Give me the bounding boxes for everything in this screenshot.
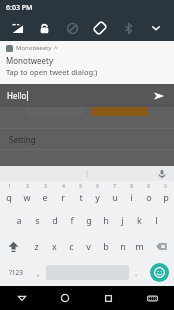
button[interactable]: 8 <box>123 181 140 207</box>
button[interactable]: Auto rotate <box>86 15 114 41</box>
staticText: y <box>95 191 100 203</box>
staticText: 7 <box>113 183 116 189</box>
button[interactable]: 1 <box>0 181 18 207</box>
button[interactable]: a <box>10 207 28 233</box>
button[interactable]: Backspace <box>148 233 174 259</box>
staticText: 2 <box>26 183 29 189</box>
staticText: 6 <box>96 183 99 189</box>
button[interactable]: ?123 <box>0 259 31 286</box>
button[interactable]: Setting <box>0 129 174 149</box>
staticText: q <box>6 191 12 203</box>
button[interactable]: . <box>129 259 144 286</box>
staticText: Monotweety <box>6 55 54 66</box>
button[interactable]: 9 <box>140 181 157 207</box>
button[interactable]: Send tweet <box>151 88 167 104</box>
button[interactable]: Bluetooth <box>114 15 142 41</box>
staticText: ^ <box>54 44 58 52</box>
button[interactable]: Do not disturb <box>58 15 86 41</box>
staticText: 3 <box>44 183 47 189</box>
button[interactable]: g <box>80 207 97 233</box>
button[interactable]: 2 <box>18 181 36 207</box>
button[interactable]: 3 <box>36 181 54 207</box>
staticText: ?123 <box>9 268 23 277</box>
button[interactable]: Home <box>43 286 86 310</box>
button[interactable]: Mobile signal LTE <box>4 15 31 41</box>
staticText: Monotweety <box>16 44 52 52</box>
staticText: v <box>86 240 91 252</box>
button[interactable]: x <box>45 233 63 259</box>
button[interactable]: k <box>131 207 148 233</box>
button[interactable]: f <box>63 207 80 233</box>
button[interactable]: 0 <box>157 181 174 207</box>
button[interactable]: s <box>28 207 46 233</box>
staticText: f <box>70 214 74 226</box>
staticText: g <box>86 214 92 226</box>
button[interactable]: Lock <box>31 15 58 41</box>
staticText: a <box>16 214 22 226</box>
button[interactable]: , <box>31 259 46 286</box>
button[interactable]: 5 <box>72 181 89 207</box>
button[interactable]: b <box>97 233 114 259</box>
staticText: h <box>103 214 109 226</box>
staticText: Tap to open tweet dialog:) <box>6 67 98 77</box>
button[interactable]: z <box>27 233 45 259</box>
staticText: 9 <box>147 183 150 189</box>
staticText: z <box>34 240 39 252</box>
staticText: p <box>163 191 169 203</box>
button[interactable]: 7 <box>106 181 123 207</box>
staticText: c <box>69 240 74 252</box>
button[interactable]: l <box>148 207 165 233</box>
button[interactable]: d <box>46 207 63 233</box>
other: Expand quick settings <box>150 22 162 34</box>
button[interactable]: Monotweety <box>0 41 174 84</box>
staticText: t <box>79 191 83 203</box>
button[interactable]: Expand quick settings <box>142 15 170 41</box>
staticText: k <box>137 214 142 226</box>
other: Bluetooth <box>122 22 135 35</box>
button[interactable]: h <box>97 207 114 233</box>
staticText: . <box>135 267 138 278</box>
staticText: u <box>112 191 118 203</box>
button[interactable]: 4 <box>54 181 72 207</box>
staticText: 6:03 PM <box>6 3 33 13</box>
other: Auto rotate <box>93 21 107 35</box>
button[interactable]: c <box>63 233 80 259</box>
button[interactable]: Hide keyboard <box>130 286 174 310</box>
button[interactable]: j <box>114 207 131 233</box>
staticText: e <box>42 191 48 203</box>
button[interactable]: m <box>131 233 148 259</box>
staticText: Setting <box>9 134 36 145</box>
button[interactable]: Voice input <box>156 168 168 180</box>
button[interactable]: Shift <box>0 233 27 259</box>
staticText: r <box>61 191 65 203</box>
button[interactable]: n <box>114 233 131 259</box>
staticText: s <box>35 214 40 226</box>
staticText: j <box>121 214 124 226</box>
staticText: 8 <box>130 183 133 189</box>
staticText: b <box>103 240 109 252</box>
button[interactable]: v <box>80 233 97 259</box>
other: Mobile signal LTE <box>11 21 25 35</box>
other: Lock <box>38 22 51 35</box>
staticText: Hello <box>7 90 27 101</box>
staticText: n <box>120 240 126 252</box>
staticText: w <box>23 191 31 203</box>
button[interactable]: Emoji <box>144 259 174 286</box>
button[interactable]: 6 <box>89 181 106 207</box>
staticText: d <box>52 214 58 226</box>
staticText: m <box>135 240 144 252</box>
staticText: 5 <box>79 183 82 189</box>
staticText: l <box>155 214 158 226</box>
staticText: , <box>37 267 40 278</box>
staticText: 1 <box>8 183 11 189</box>
staticText: i <box>130 191 133 203</box>
button[interactable]: Back <box>0 286 43 310</box>
staticText: o <box>146 191 152 203</box>
button[interactable]: Recent apps <box>86 286 130 310</box>
staticText: x <box>52 240 57 252</box>
other: Do not disturb <box>66 22 79 35</box>
staticText: 0 <box>164 183 167 189</box>
